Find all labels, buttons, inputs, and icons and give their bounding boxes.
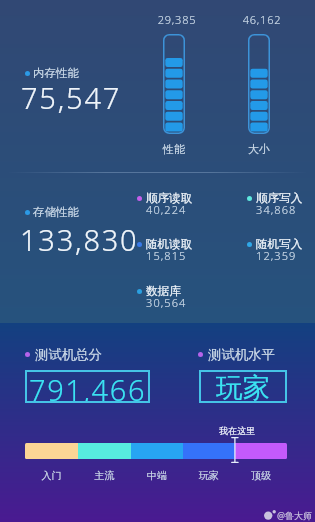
button[interactable]: 测试机总分 — [25, 346, 102, 363]
staticText: 30,564 — [146, 295, 187, 310]
staticText: 玩家 — [216, 371, 270, 404]
button[interactable]: 内存性能 — [25, 66, 79, 80]
staticText: 测试机总分 — [35, 346, 102, 363]
staticText: 46,162 — [240, 12, 284, 27]
staticText: 中端 — [131, 469, 183, 482]
staticText: 顺序读取 — [146, 191, 193, 206]
staticText: 入门 — [25, 469, 78, 482]
button[interactable]: 791,466 — [25, 370, 150, 403]
staticText: 存储性能 — [33, 205, 79, 219]
staticText: 测试机水平 — [208, 346, 275, 363]
staticText: 主流 — [78, 469, 131, 482]
staticText: 12,359 — [256, 248, 297, 263]
staticText: 顺序写入 — [256, 191, 303, 206]
button[interactable]: 测试机水平 — [198, 346, 275, 363]
staticText: 数据库 — [146, 284, 181, 299]
staticText: 随机读取 — [146, 237, 193, 252]
button[interactable]: 随机读取 — [137, 237, 193, 267]
staticText: 随机写入 — [256, 237, 303, 252]
button[interactable]: 顺序写入 — [247, 191, 303, 221]
button[interactable]: 顺序读取 — [137, 191, 193, 221]
staticText: 133,830 — [20, 220, 139, 259]
staticText: 75,547 — [21, 78, 122, 117]
button[interactable] — [25, 443, 287, 459]
button[interactable]: 随机写入 — [247, 237, 303, 267]
button[interactable]: 存储性能 — [25, 205, 79, 219]
staticText: 15,815 — [146, 248, 187, 263]
button[interactable]: 数据库 — [137, 284, 181, 314]
staticText: 29,385 — [155, 12, 199, 27]
staticText: 我在这里 — [213, 425, 261, 436]
staticText: 内存性能 — [33, 66, 79, 80]
button[interactable]: 玩家 — [199, 370, 287, 403]
staticText: 34,868 — [256, 202, 297, 217]
staticText: 顶级 — [235, 469, 287, 482]
staticText: @鲁大师 — [277, 509, 313, 521]
staticText: 大小 — [237, 142, 281, 156]
staticText: 性能 — [152, 142, 196, 156]
staticText: 40,224 — [146, 202, 187, 217]
staticText: 玩家 — [183, 469, 235, 482]
staticText: 791,466 — [29, 370, 147, 403]
